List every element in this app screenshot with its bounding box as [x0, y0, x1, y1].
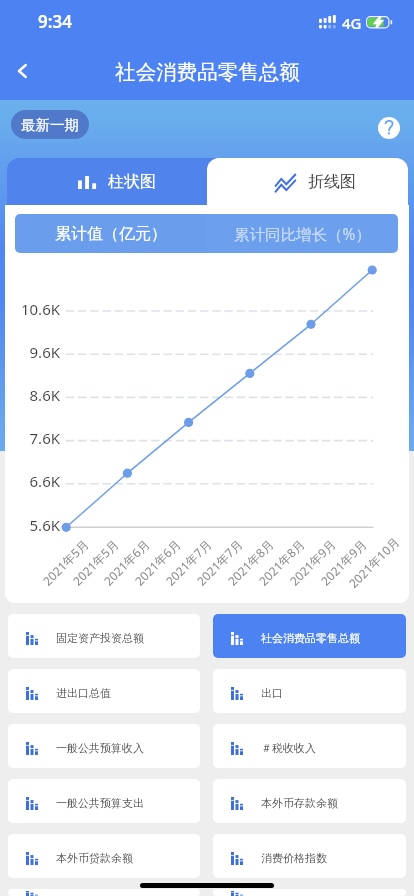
button[interactable] [213, 889, 406, 896]
staticText: 10.6K [20, 299, 60, 319]
staticText: 2021年9月 [286, 535, 339, 588]
staticText: 4G [342, 13, 362, 33]
staticText: 5.6K [29, 515, 60, 535]
button[interactable]: 累计同比增长（%） [206, 214, 398, 253]
button[interactable] [8, 889, 200, 896]
staticText: 2021年9月 [317, 535, 370, 588]
button[interactable]: 一般公共预算收入 [8, 724, 200, 768]
staticText: 累计同比增长（%） [234, 223, 371, 244]
staticText: 9.6K [29, 342, 60, 362]
button[interactable]: 出口 [213, 669, 406, 713]
staticText: 折线图 [308, 172, 356, 192]
staticText: 2021年6月 [100, 535, 153, 588]
button[interactable]: 固定资产投资总额 [8, 614, 200, 658]
staticText: 一般公共预算支出 [56, 796, 144, 810]
staticText: 累计值（亿元） [55, 224, 167, 244]
button[interactable]: Help [378, 117, 400, 139]
staticText: 2021年5月 [69, 535, 122, 588]
staticText: 进出口总值 [56, 686, 111, 700]
button[interactable]: 本外币贷款余额 [8, 834, 200, 878]
button[interactable]: 累计值（亿元） [15, 214, 206, 253]
staticText: 最新一期 [21, 116, 79, 134]
staticText: 2021年7月 [193, 535, 246, 588]
staticText: 出口 [261, 686, 283, 700]
staticText: 一般公共预算收入 [56, 741, 144, 755]
button[interactable]: 社会消费品零售总额 [213, 614, 406, 658]
button[interactable]: 柱状图 [7, 158, 226, 206]
staticText: 2021年8月 [224, 535, 277, 588]
staticText: 2021年6月 [131, 535, 184, 588]
button[interactable]: 一般公共预算支出 [8, 779, 200, 823]
button[interactable]: Back [0, 48, 46, 94]
staticText: 8.6K [29, 385, 60, 405]
button[interactable]: 进出口总值 [8, 669, 200, 713]
button[interactable]: 本外币存款余额 [213, 779, 406, 823]
staticText: 本外币存款余额 [261, 796, 338, 810]
staticText: 本外币贷款余额 [56, 851, 133, 865]
staticText: 2021年7月 [162, 535, 215, 588]
staticText: ＃税收收入 [261, 741, 316, 755]
staticText: 7.6K [29, 428, 60, 448]
staticText: 消费价格指数 [261, 851, 327, 865]
button[interactable]: 最新一期 [11, 110, 89, 139]
staticText: 柱状图 [108, 172, 156, 192]
staticText: 2021年8月 [255, 535, 308, 588]
staticText: 社会消费品零售总额 [115, 59, 300, 85]
staticText: 社会消费品零售总额 [261, 631, 360, 645]
staticText: 2021年5月 [39, 535, 92, 588]
button[interactable]: 折线图 [207, 158, 408, 206]
button[interactable]: 消费价格指数 [213, 834, 406, 878]
staticText: 2021年10月 [345, 533, 403, 591]
staticText: 6.6K [29, 471, 60, 491]
staticText: 9:34 [38, 10, 72, 33]
staticText: 固定资产投资总额 [56, 631, 144, 645]
button[interactable]: ＃税收收入 [213, 724, 406, 768]
